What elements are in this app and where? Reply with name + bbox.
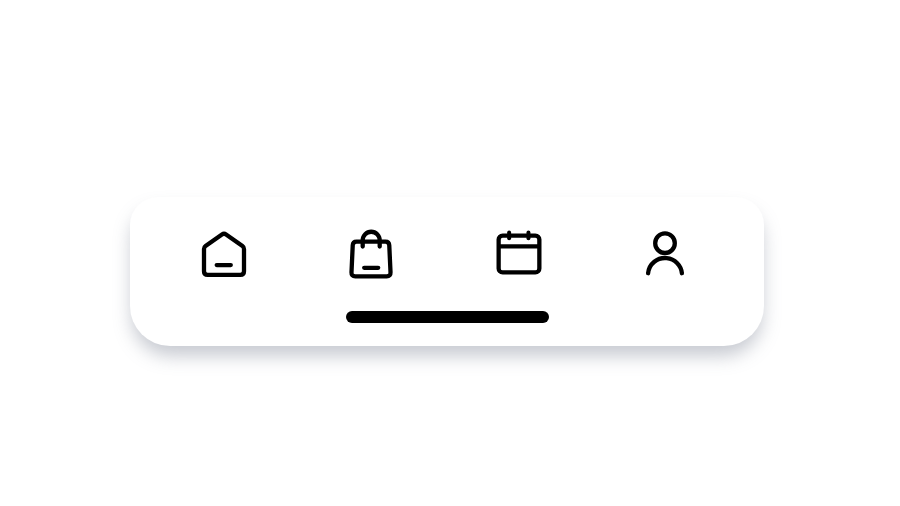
button[interactable]: Shop bbox=[326, 214, 416, 294]
button[interactable]: Profile bbox=[620, 213, 710, 293]
button[interactable]: Calendar bbox=[474, 214, 564, 294]
button[interactable] bbox=[346, 311, 549, 323]
button[interactable]: Home bbox=[179, 214, 269, 294]
